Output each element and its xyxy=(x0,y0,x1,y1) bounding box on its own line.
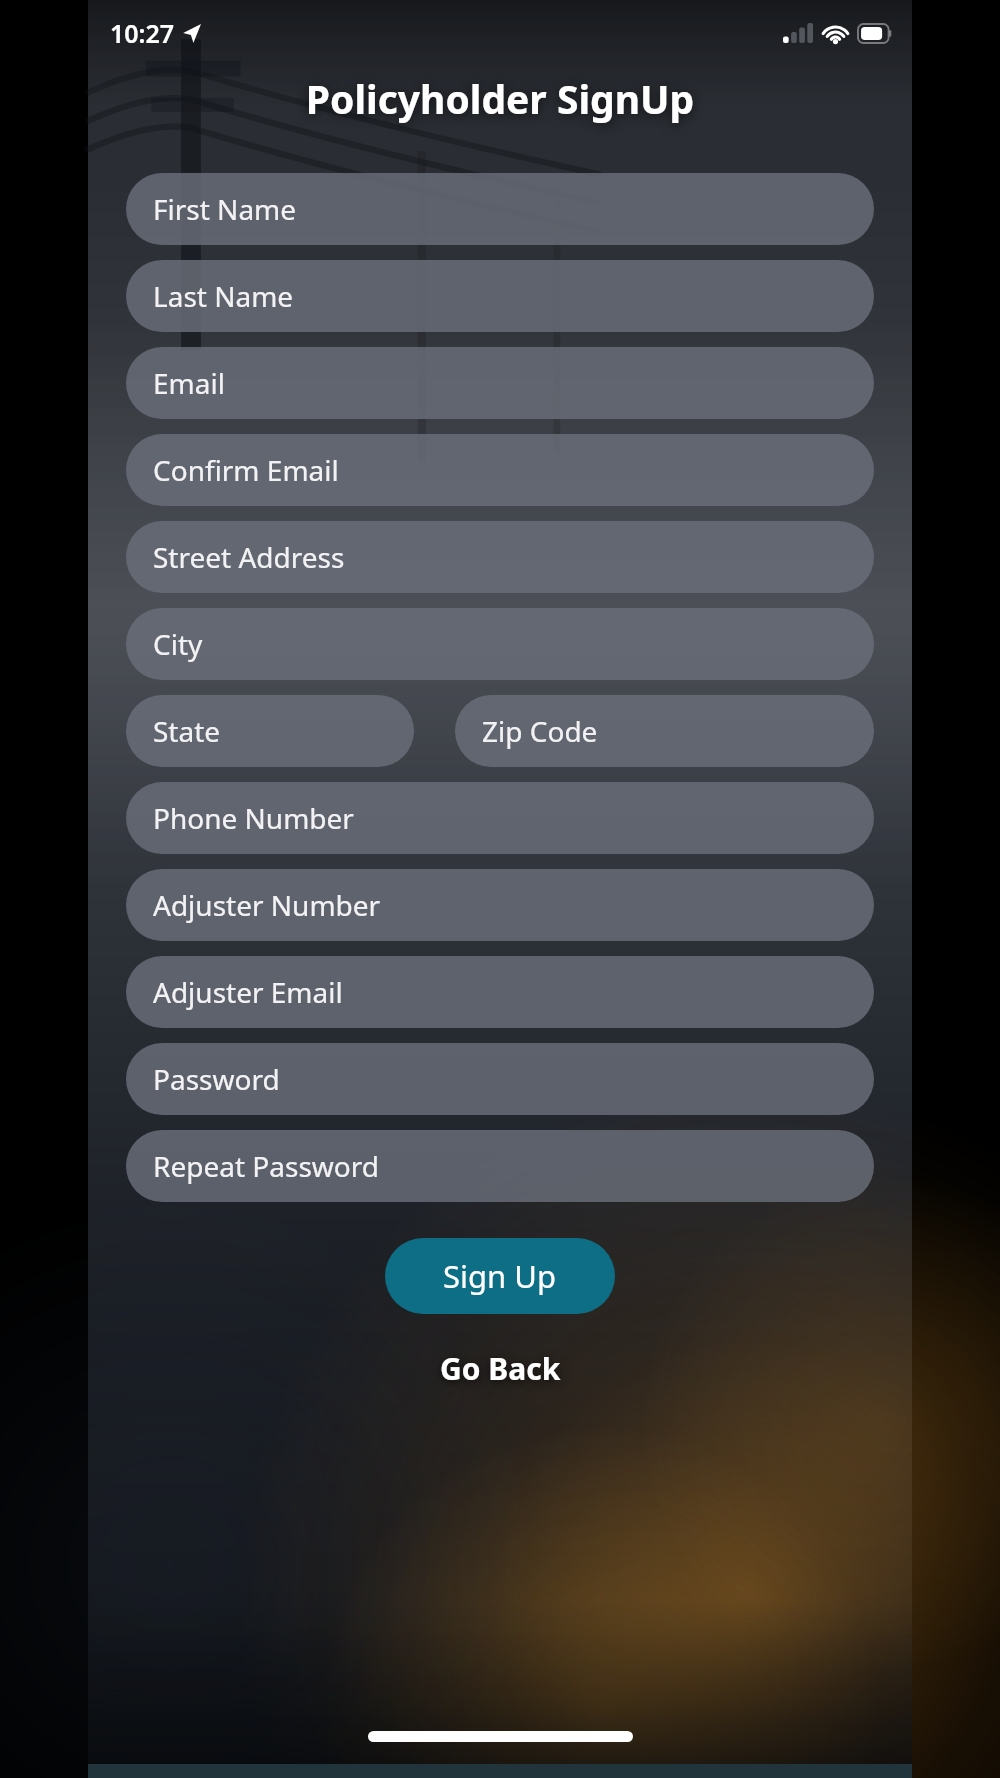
button[interactable]: Confirm Email xyxy=(126,434,874,506)
staticText: Email xyxy=(153,364,225,402)
button[interactable]: Last Name xyxy=(126,260,874,332)
button[interactable]: First Name xyxy=(126,173,874,245)
button[interactable]: Street Address xyxy=(126,521,874,593)
staticText: Adjuster Email xyxy=(153,973,343,1011)
staticText: Adjuster Number xyxy=(153,886,381,924)
button[interactable]: Adjuster Email xyxy=(126,956,874,1028)
staticText: Street Address xyxy=(153,538,345,576)
staticText: Phone Number xyxy=(153,799,354,837)
button[interactable]: Sign Up xyxy=(385,1238,615,1314)
button[interactable]: Adjuster Number xyxy=(126,869,874,941)
staticText: Sign Up xyxy=(443,1255,557,1297)
staticText: State xyxy=(153,712,221,750)
staticText: Last Name xyxy=(153,277,294,315)
button[interactable]: Zip Code xyxy=(455,695,874,767)
staticText: Confirm Email xyxy=(153,451,339,489)
staticText: Policyholder SignUp xyxy=(88,72,912,125)
staticText: Go Back xyxy=(440,1348,561,1389)
button[interactable]: Email xyxy=(126,347,874,419)
button[interactable]: Phone Number xyxy=(126,782,874,854)
staticText: Zip Code xyxy=(482,712,598,750)
button[interactable]: City xyxy=(126,608,874,680)
staticText: Password xyxy=(153,1060,280,1098)
button[interactable]: Password xyxy=(126,1043,874,1115)
button[interactable]: Go Back xyxy=(422,1340,579,1397)
staticText: First Name xyxy=(153,190,297,228)
button[interactable]: Repeat Password xyxy=(126,1130,874,1202)
staticText: 10:27 xyxy=(110,16,175,50)
staticText: City xyxy=(153,625,203,663)
button[interactable]: State xyxy=(126,695,414,767)
staticText: Repeat Password xyxy=(153,1147,379,1185)
